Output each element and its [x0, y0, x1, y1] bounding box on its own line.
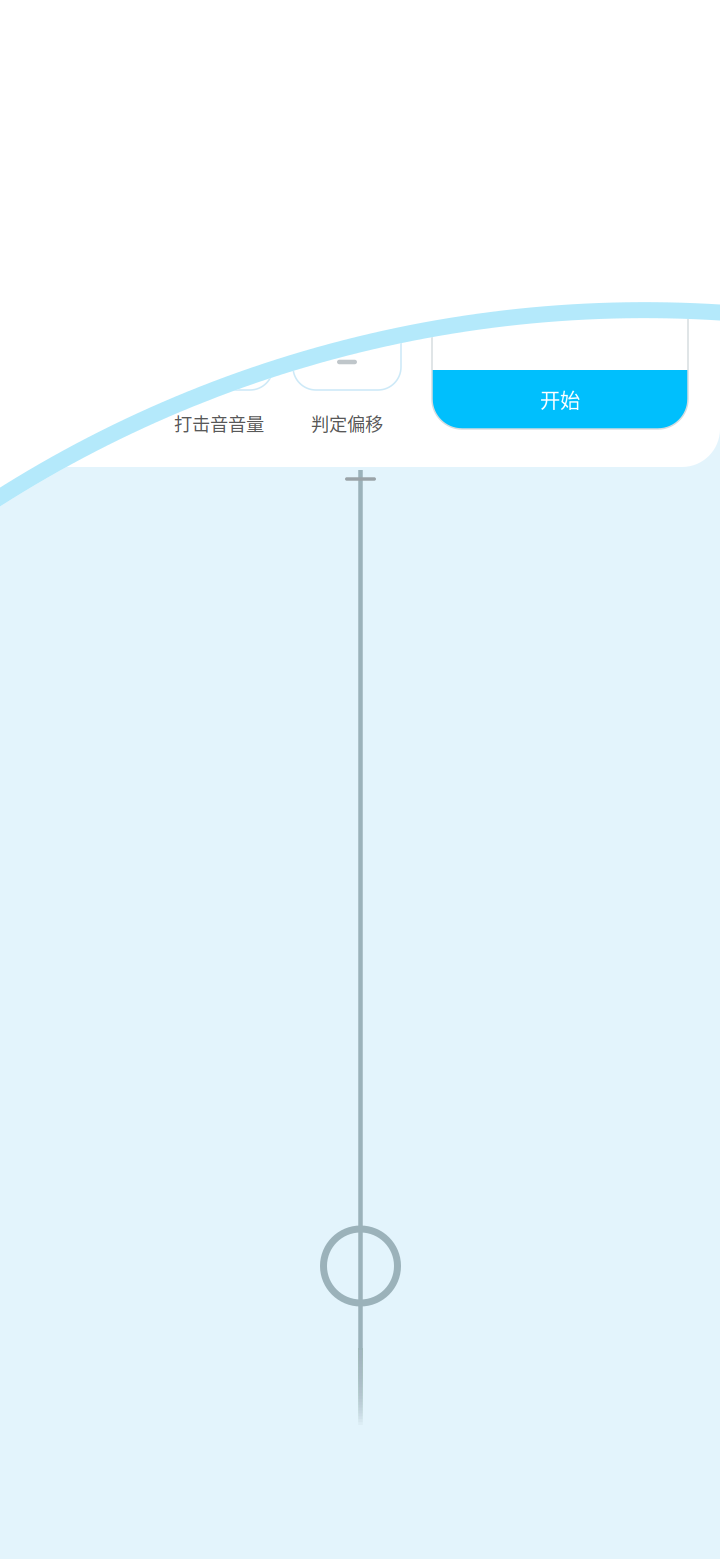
staticText: 判定偏移: [311, 410, 383, 436]
button[interactable]: 打击音音量: [129, 408, 309, 438]
button[interactable]: Adjust: [165, 250, 273, 390]
staticText: 打击音音量: [174, 410, 264, 436]
button[interactable]: 开始: [432, 250, 688, 429]
staticText: 开始: [540, 385, 580, 414]
button[interactable]: 判定偏移: [257, 408, 437, 438]
button[interactable]: Adjust: [293, 250, 401, 390]
